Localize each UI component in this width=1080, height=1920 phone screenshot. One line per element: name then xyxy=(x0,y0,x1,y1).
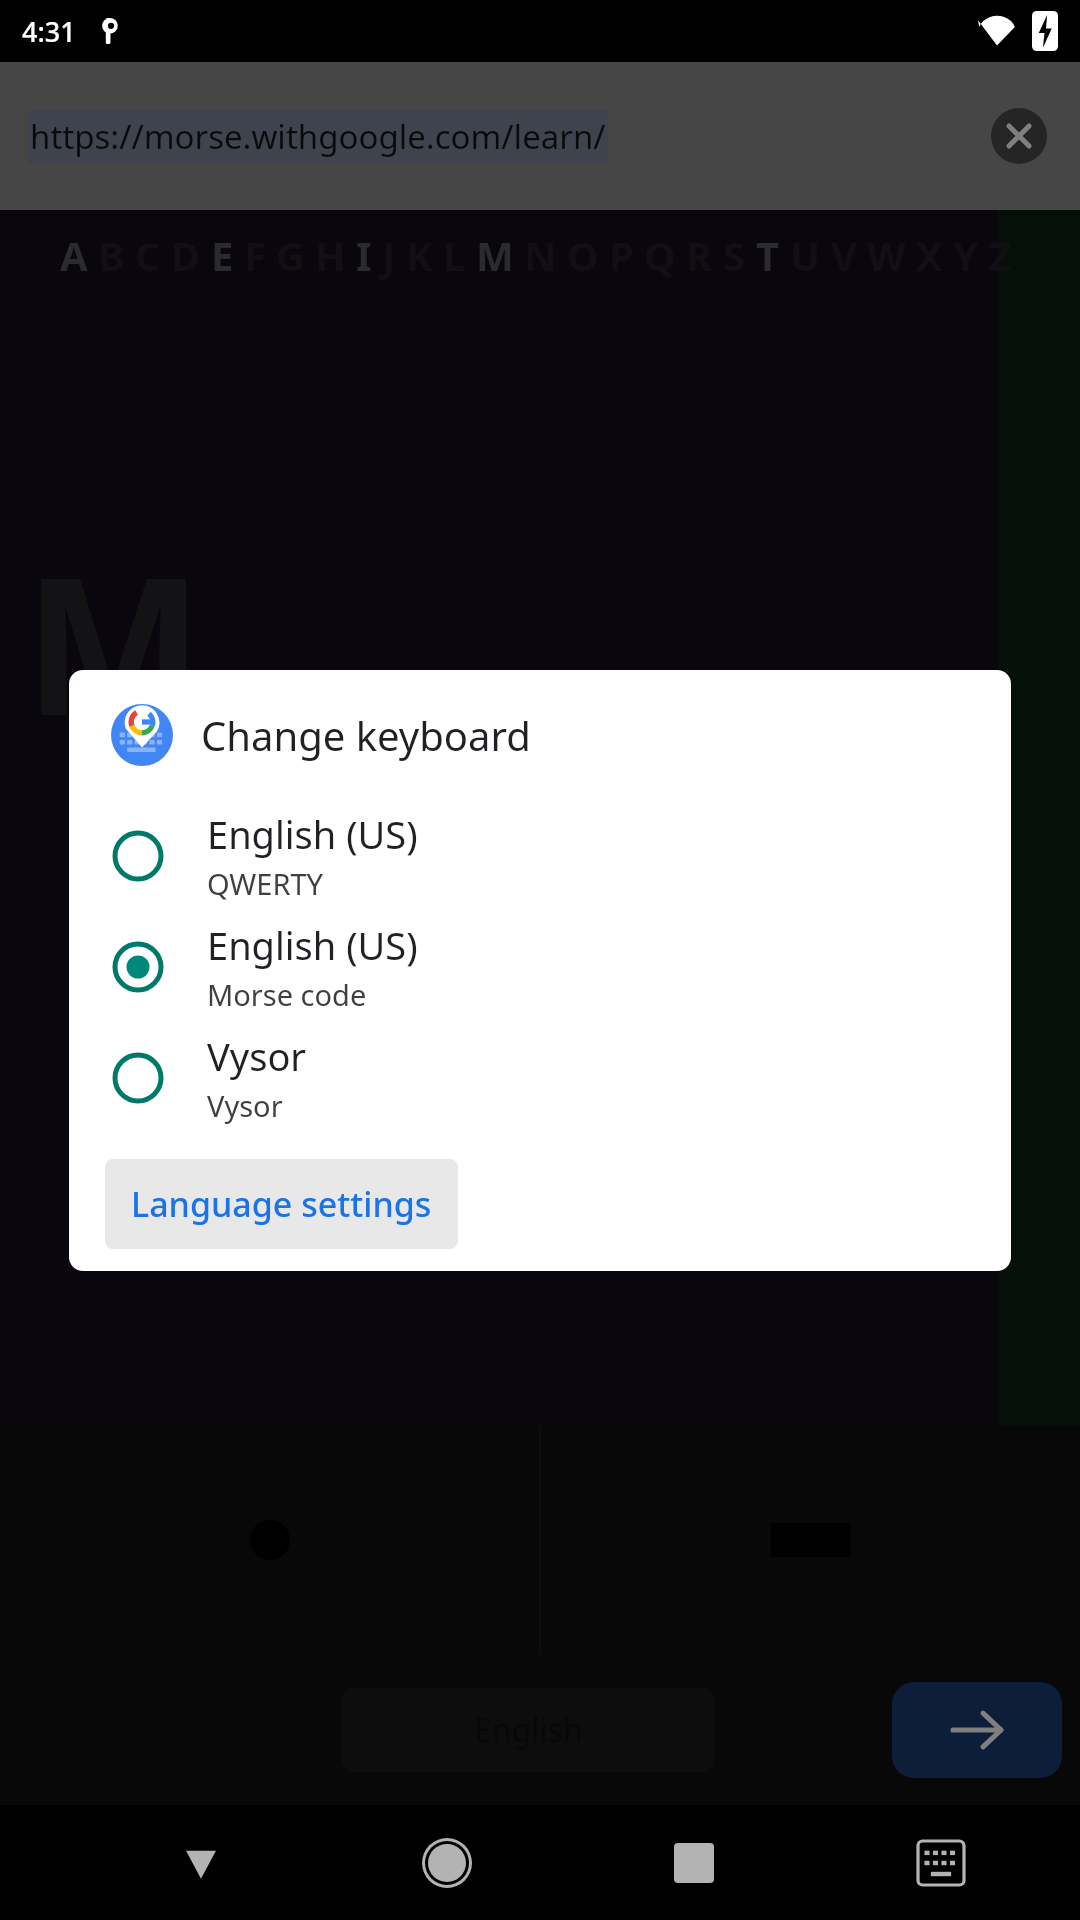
staticText: M xyxy=(24,512,204,771)
button[interactable]: English (US) xyxy=(69,911,1011,1022)
staticText: D xyxy=(171,228,201,282)
staticText: Q xyxy=(644,228,676,282)
staticText: T xyxy=(756,228,780,282)
staticText: O xyxy=(567,228,599,282)
staticText: R xyxy=(686,228,713,282)
staticText: Morse code xyxy=(207,975,367,1014)
staticText: 4:31 xyxy=(22,13,76,50)
button[interactable]: Keyboard xyxy=(896,1818,986,1908)
staticText: L xyxy=(443,228,466,282)
staticText: Y xyxy=(953,228,979,282)
button[interactable]: Home xyxy=(402,1818,492,1908)
staticText: C xyxy=(135,228,161,282)
staticText: H xyxy=(315,228,346,282)
staticText: P xyxy=(609,228,634,282)
staticText: X xyxy=(916,228,943,282)
staticText: W xyxy=(867,228,906,282)
staticText: V xyxy=(831,228,857,282)
staticText: S xyxy=(723,228,746,282)
button[interactable]: Back xyxy=(156,1818,246,1908)
staticText: G xyxy=(276,228,305,282)
staticText: B xyxy=(98,228,125,282)
staticText: Vysor xyxy=(207,1030,307,1082)
staticText: E xyxy=(211,228,234,282)
staticText: M xyxy=(476,228,514,282)
button[interactable]: Recents xyxy=(649,1818,739,1908)
staticText: U xyxy=(790,228,821,282)
button[interactable]: Language settings xyxy=(105,1159,458,1249)
staticText: English (US) xyxy=(207,919,418,971)
staticText: QWERTY xyxy=(207,864,324,903)
staticText: N xyxy=(524,228,557,282)
staticText: English (US) xyxy=(207,808,418,860)
staticText: https://morse.withgoogle.com/learn/ xyxy=(30,114,606,159)
staticText: J xyxy=(382,228,396,282)
button[interactable]: Clear xyxy=(990,107,1048,165)
staticText: Vysor xyxy=(207,1086,283,1125)
staticText: Change keyboard xyxy=(201,708,531,762)
button[interactable]: Vysor xyxy=(69,1022,1011,1133)
staticText: I xyxy=(356,228,372,282)
staticText: F xyxy=(244,228,266,282)
staticText: Language settings xyxy=(131,1181,432,1227)
staticText: Z xyxy=(989,228,1013,282)
button[interactable]: Enter xyxy=(892,1682,1062,1778)
staticText: A xyxy=(60,228,88,282)
button[interactable]: English (US) xyxy=(69,800,1011,911)
staticText: K xyxy=(406,228,433,282)
